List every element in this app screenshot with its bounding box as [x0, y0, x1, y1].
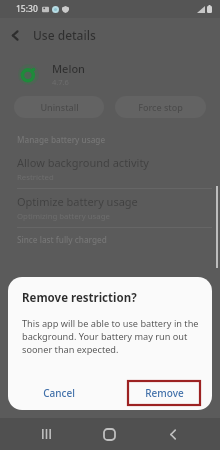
- staticText: Use details: [33, 27, 96, 43]
- button[interactable]: Back: [156, 419, 190, 449]
- staticText: Uninstall: [40, 101, 79, 113]
- staticText: Melon: [52, 61, 85, 76]
- button[interactable]: Optimize battery usage: [0, 189, 220, 227]
- button[interactable]: Back: [0, 20, 30, 50]
- staticText: This app will be able to use battery in …: [22, 317, 200, 356]
- staticText: 15:30: [16, 3, 38, 15]
- staticText: Force stop: [138, 101, 183, 113]
- staticText: Optimizing battery usage: [17, 211, 110, 222]
- staticText: Allow background activity: [17, 155, 149, 170]
- staticText: Restricted: [17, 172, 54, 183]
- staticText: Since last fully charged: [17, 234, 107, 245]
- button[interactable]: Remove: [128, 381, 200, 405]
- button[interactable]: Force stop: [115, 96, 206, 118]
- button[interactable]: Cancel: [30, 381, 88, 405]
- button[interactable]: Home: [92, 419, 126, 449]
- staticText: Remove: [145, 386, 184, 400]
- button[interactable]: Uninstall: [14, 96, 104, 118]
- staticText: Optimize battery usage: [17, 194, 138, 209]
- staticText: Cancel: [43, 386, 75, 400]
- staticText: Manage battery usage: [17, 134, 106, 145]
- button[interactable]: Recent apps: [29, 419, 63, 449]
- staticText: 4.7.6: [52, 77, 69, 87]
- button[interactable]: Allow background activity: [0, 150, 220, 188]
- staticText: Remove restriction?: [22, 290, 137, 306]
